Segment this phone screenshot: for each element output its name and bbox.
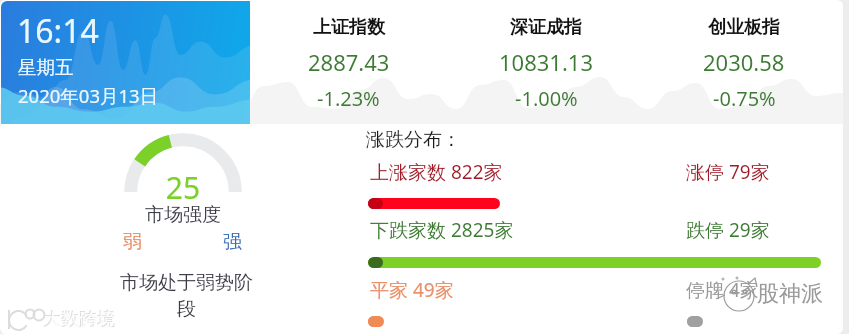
staticText: 跌停 29家 xyxy=(686,217,770,243)
staticText: 强 xyxy=(223,230,242,254)
staticText: 2020年03月13日 xyxy=(18,83,159,108)
staticText: 大数跨境 xyxy=(43,308,115,331)
staticText: 上证指数 xyxy=(313,16,385,39)
staticText: 2030.58 xyxy=(703,47,785,77)
staticText: 市场强度 xyxy=(83,203,283,227)
staticText: 弱 xyxy=(123,230,142,254)
staticText: 平家 49家 xyxy=(370,277,454,303)
staticText: 涨停 79家 xyxy=(686,159,770,185)
button[interactable]: 深证成指 xyxy=(447,0,645,124)
button[interactable]: 涨停 79家 xyxy=(686,159,770,185)
staticText: 创业板指 xyxy=(708,16,780,39)
button[interactable]: 停牌 4家 xyxy=(686,277,759,303)
staticText: 停牌 4家 xyxy=(686,277,759,303)
staticText: 大数跨境 xyxy=(44,309,116,332)
button[interactable]: 平家 49家 xyxy=(370,277,454,303)
staticText: 涨跌分布： xyxy=(366,128,461,152)
staticText: 16:14 xyxy=(17,9,99,53)
staticText: 10831.13 xyxy=(499,47,593,77)
button[interactable]: 上证指数 xyxy=(250,0,447,124)
staticText: -1.00% xyxy=(515,85,578,112)
staticText: 股神派 xyxy=(757,280,823,308)
button[interactable]: 上涨家数 822家 xyxy=(370,159,503,185)
staticText: 星期五 xyxy=(18,56,74,79)
staticText: 上涨家数 822家 xyxy=(370,159,503,185)
button[interactable]: 跌停 29家 xyxy=(686,217,770,243)
staticText: 2887.43 xyxy=(308,47,390,77)
staticText: 深证成指 xyxy=(510,16,582,39)
staticText: 25 xyxy=(83,167,283,208)
staticText: 市场处于弱势阶段 xyxy=(120,271,253,321)
button[interactable]: 创业板指 xyxy=(645,0,843,124)
staticText: -1.23% xyxy=(317,85,380,112)
staticText: -0.75% xyxy=(713,85,776,112)
button[interactable]: 下跌家数 2825家 xyxy=(370,217,514,243)
staticText: 下跌家数 2825家 xyxy=(370,217,514,243)
